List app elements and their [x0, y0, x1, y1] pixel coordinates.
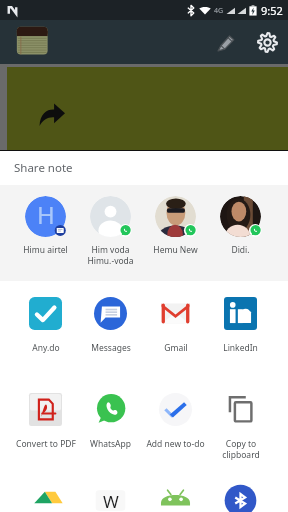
button[interactable]: Convert to PDF: [13, 377, 78, 473]
button[interactable]: Android: [143, 473, 208, 512]
staticText: Himu airtel: [23, 244, 68, 256]
staticText: Share note: [14, 160, 73, 176]
staticText: Didi.: [231, 244, 250, 256]
staticText: 4G: [214, 6, 224, 16]
staticText: Hemu New: [153, 244, 198, 256]
staticText: Him voda Himu.-voda: [87, 244, 134, 266]
button[interactable]: Any.do: [13, 281, 78, 377]
button[interactable]: W: [78, 473, 143, 512]
button[interactable]: Drive: [13, 473, 78, 512]
button[interactable]: WhatsApp: [78, 377, 143, 473]
button[interactable]: Messages: [78, 281, 143, 377]
staticText: Gmail: [164, 342, 188, 354]
staticText: WhatsApp: [90, 438, 131, 450]
button[interactable]: Bluetooth: [208, 473, 273, 512]
button[interactable]: LinkedIn: [208, 281, 273, 377]
button[interactable]: Didi.: [208, 185, 273, 256]
button[interactable]: Notes: [10, 26, 46, 59]
staticText: Copy to clipboard: [222, 438, 260, 460]
button[interactable]: Edit: [206, 22, 246, 62]
staticText: Any.do: [32, 342, 60, 354]
staticText: 9:52: [261, 3, 283, 18]
button[interactable]: Copy to clipboard: [208, 377, 273, 473]
button[interactable]: Hemu New: [143, 185, 208, 256]
staticText: Convert to PDF: [16, 438, 76, 450]
button[interactable]: Add new to-do: [143, 377, 208, 473]
staticText: W: [103, 490, 119, 512]
staticText: Messages: [91, 342, 131, 354]
button[interactable]: Him voda Himu.-voda: [78, 185, 143, 266]
button[interactable]: H: [13, 185, 78, 256]
staticText: LinkedIn: [223, 342, 258, 354]
button[interactable]: Gmail: [143, 281, 208, 377]
staticText: H: [37, 198, 55, 231]
button[interactable]: Settings: [246, 21, 288, 63]
staticText: Add new to-do: [146, 438, 205, 450]
